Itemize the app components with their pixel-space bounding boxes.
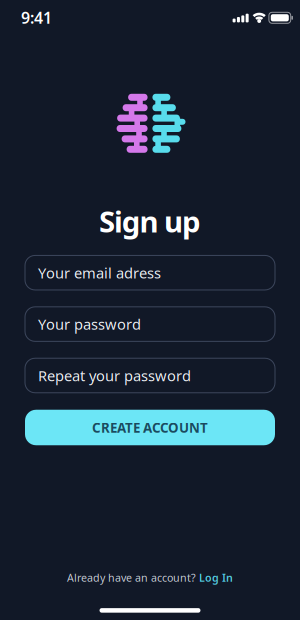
staticText: Sign up xyxy=(99,201,201,240)
staticText: Your email adress xyxy=(38,263,161,282)
button[interactable]: CREATE ACCOUNT xyxy=(25,410,275,445)
button[interactable]: Log In xyxy=(199,570,233,585)
staticText: Log In xyxy=(199,570,233,585)
staticText: Already have an account? xyxy=(67,570,196,585)
button[interactable]: Repeat your password xyxy=(25,358,275,393)
staticText: Repeat your password xyxy=(38,366,191,385)
button[interactable]: Your email adress xyxy=(25,255,275,290)
staticText: CREATE ACCOUNT xyxy=(92,419,208,436)
staticText: 9:41 xyxy=(21,7,52,28)
staticText: Your password xyxy=(38,314,141,334)
button[interactable]: Your password xyxy=(25,307,275,341)
